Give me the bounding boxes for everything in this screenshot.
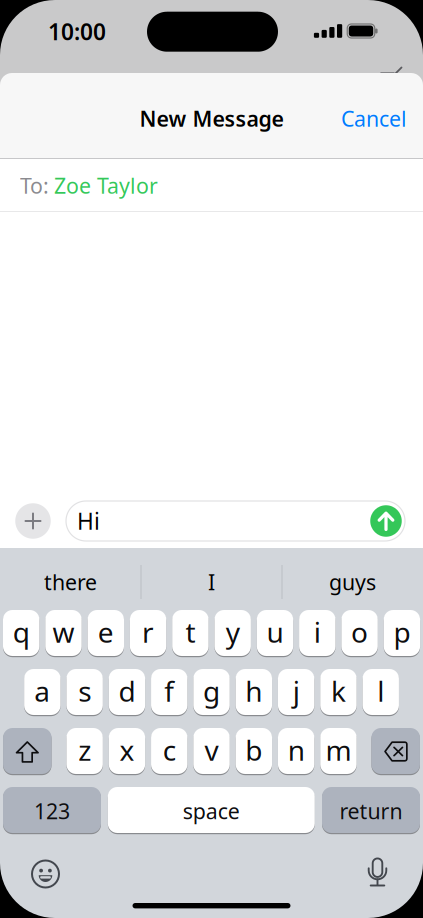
button[interactable]: there xyxy=(1,559,140,605)
button[interactable]: g xyxy=(193,669,230,717)
staticText: New Message xyxy=(139,104,283,133)
staticText: h xyxy=(245,672,262,710)
button[interactable]: p xyxy=(384,610,420,658)
button[interactable]: r xyxy=(130,610,166,658)
staticText: e xyxy=(98,613,114,651)
staticText: j xyxy=(293,672,300,710)
button[interactable]: l xyxy=(363,669,399,717)
staticText: v xyxy=(205,731,219,769)
button[interactable]: space xyxy=(108,787,315,835)
staticText: w xyxy=(52,613,74,651)
button[interactable]: To: xyxy=(0,159,423,212)
staticText: guys xyxy=(329,568,376,596)
button[interactable]: q xyxy=(3,610,39,658)
staticText: b xyxy=(245,731,262,769)
button[interactable]: d xyxy=(109,669,145,717)
button[interactable]: f xyxy=(151,669,187,717)
staticText: k xyxy=(331,672,346,710)
button[interactable]: i xyxy=(299,610,335,658)
staticText: there xyxy=(44,568,97,596)
staticText: Hi xyxy=(77,506,100,536)
staticText: t xyxy=(185,613,195,651)
button[interactable]: e xyxy=(88,610,124,658)
button[interactable]: Cancel xyxy=(341,104,407,133)
button[interactable]: w xyxy=(45,610,82,658)
staticText: x xyxy=(119,731,134,769)
staticText: c xyxy=(163,731,176,769)
staticText: g xyxy=(203,672,220,710)
staticText: f xyxy=(164,672,174,710)
button[interactable]: Delete xyxy=(371,728,420,776)
button[interactable]: Apps xyxy=(15,503,51,539)
staticText: o xyxy=(351,613,368,651)
button[interactable]: b xyxy=(236,728,272,776)
staticText: l xyxy=(377,672,384,710)
staticText: return xyxy=(339,797,402,825)
staticText: 10:00 xyxy=(48,16,106,46)
button[interactable]: k xyxy=(320,669,357,717)
staticText: m xyxy=(325,731,351,769)
staticText: I xyxy=(208,568,215,596)
staticText: z xyxy=(78,731,91,769)
button[interactable]: x xyxy=(109,728,145,776)
staticText: s xyxy=(78,672,91,710)
staticText: Cancel xyxy=(341,104,407,133)
button[interactable]: j xyxy=(278,669,314,717)
button[interactable]: Shift xyxy=(3,728,52,776)
button[interactable]: t xyxy=(172,610,209,658)
button[interactable]: n xyxy=(278,728,314,776)
staticText: r xyxy=(142,613,154,651)
button[interactable]: u xyxy=(257,610,293,658)
staticText: a xyxy=(34,672,50,710)
staticText: i xyxy=(314,613,321,651)
button[interactable]: I xyxy=(142,559,281,605)
button[interactable]: o xyxy=(341,610,378,658)
staticText: y xyxy=(226,613,240,651)
staticText: n xyxy=(288,731,305,769)
button[interactable]: y xyxy=(214,610,251,658)
button[interactable]: Send xyxy=(370,505,402,537)
staticText: space xyxy=(183,797,240,825)
button[interactable]: guys xyxy=(283,559,422,605)
button[interactable]: Hi xyxy=(66,501,405,541)
staticText: p xyxy=(393,613,410,651)
button[interactable]: s xyxy=(66,669,103,717)
button[interactable]: Emoji xyxy=(31,860,59,888)
button[interactable]: m xyxy=(320,728,357,776)
button[interactable]: Numbers xyxy=(3,787,101,835)
staticText: d xyxy=(118,672,135,710)
staticText: To: xyxy=(20,171,49,200)
button[interactable]: Dictation xyxy=(362,857,392,891)
staticText: 123 xyxy=(34,797,70,825)
button[interactable]: return xyxy=(322,787,420,835)
button[interactable]: z xyxy=(66,728,103,776)
button[interactable]: c xyxy=(151,728,187,776)
button[interactable]: a xyxy=(24,669,61,717)
staticText: Zoe Taylor xyxy=(54,171,158,200)
staticText: u xyxy=(266,613,283,651)
button[interactable]: v xyxy=(193,728,230,776)
staticText: q xyxy=(13,613,30,651)
button[interactable]: h xyxy=(236,669,272,717)
